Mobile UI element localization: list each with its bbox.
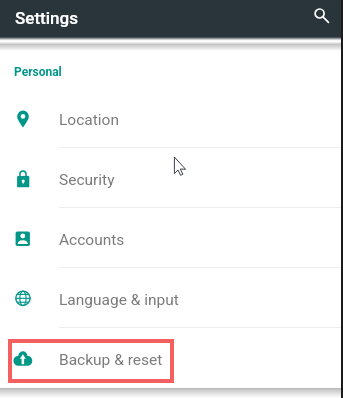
staticText: Backup & reset: [59, 351, 163, 369]
staticText: Language & input: [59, 291, 179, 309]
staticText: Personal: [14, 65, 62, 79]
staticText: Security: [59, 171, 115, 189]
button[interactable]: Security: [0, 148, 343, 207]
button[interactable]: Language & input: [0, 268, 343, 327]
button[interactable]: Backup & reset: [0, 328, 343, 387]
button[interactable]: Accounts: [0, 208, 343, 267]
staticText: Settings: [15, 8, 78, 28]
button[interactable]: Location: [0, 88, 343, 147]
staticText: Location: [59, 111, 119, 129]
staticText: Accounts: [59, 231, 125, 249]
button[interactable]: Search: [307, 1, 333, 27]
